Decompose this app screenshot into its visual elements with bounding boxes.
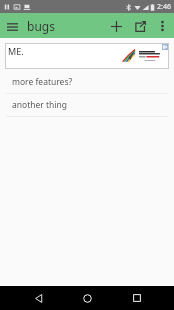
staticText: more features?: [12, 76, 73, 88]
button[interactable]: Share: [128, 14, 152, 38]
staticText: ME.: [8, 45, 24, 57]
button[interactable]: Home: [75, 286, 99, 310]
button[interactable]: Recent apps: [125, 286, 149, 310]
button[interactable]: Add: [104, 14, 128, 38]
button[interactable]: another thing: [0, 94, 174, 116]
button[interactable]: more features?: [0, 71, 174, 93]
button[interactable]: More options: [152, 16, 172, 36]
button[interactable]: Back: [26, 286, 50, 310]
staticText: bugs: [27, 18, 55, 34]
staticText: another thing: [12, 99, 67, 111]
button[interactable]: Open navigation menu: [0, 14, 24, 38]
button[interactable]: Advertisement: [5, 43, 169, 69]
staticText: 2:46: [157, 2, 171, 12]
